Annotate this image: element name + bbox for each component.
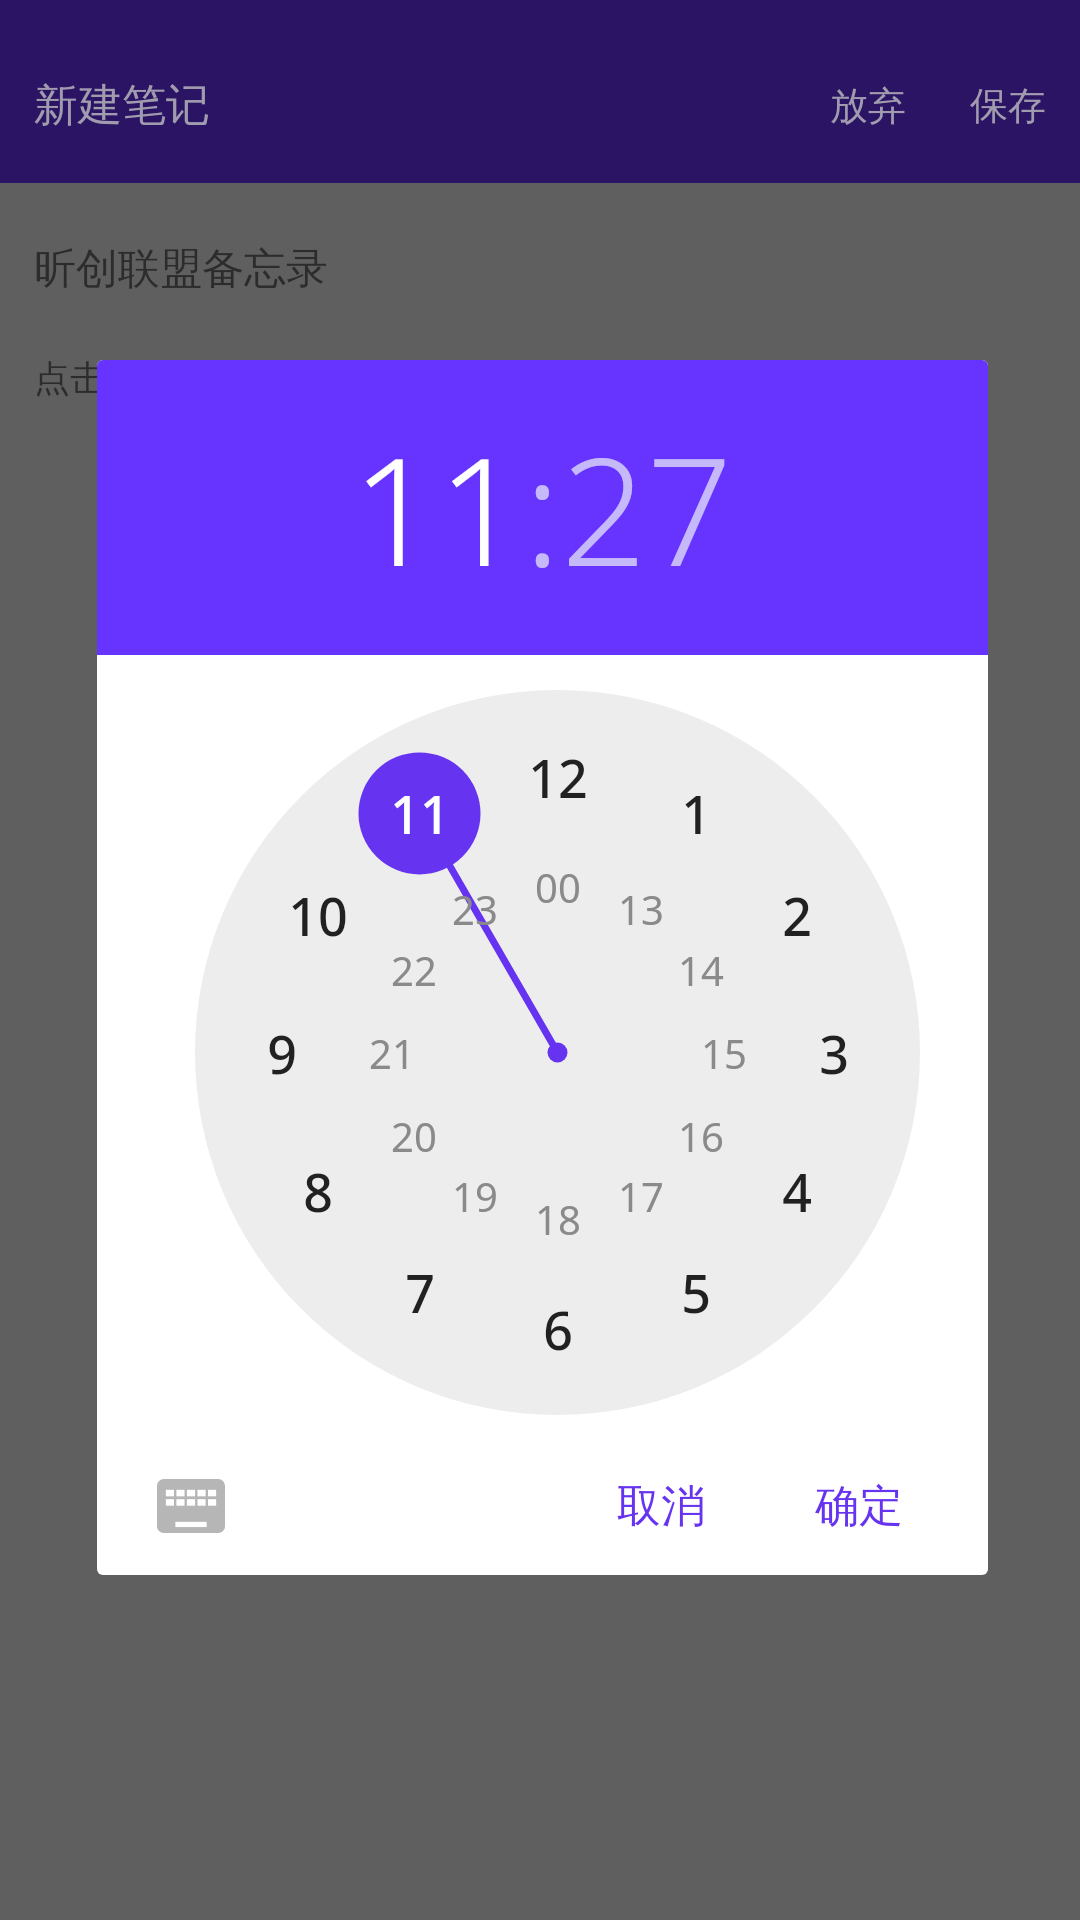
button[interactable]: 7 [360,1257,480,1327]
staticText: 8 [303,1156,333,1226]
button[interactable]: 5 [636,1257,756,1327]
button[interactable]: 11 [352,406,524,610]
staticText: 12 [528,742,588,812]
staticText: 14 [678,943,724,997]
staticText: 17 [618,1169,664,1223]
staticText: 新建笔记 [34,78,210,133]
button[interactable]: 8 [258,1156,378,1226]
button[interactable]: 22 [354,935,474,1005]
staticText: 15 [701,1026,747,1080]
button[interactable]: Switch to text input [155,1477,227,1535]
button[interactable]: 3 [774,1018,894,1088]
staticText: 11 [390,778,450,848]
button[interactable]: 19 [415,1161,535,1231]
button[interactable]: 确定 [803,1467,915,1546]
staticText: 6 [543,1294,573,1364]
button[interactable]: 6 [498,1294,618,1364]
button[interactable]: 10 [258,880,378,950]
button[interactable]: 12 [498,742,618,812]
button[interactable]: 23 [415,874,535,944]
button[interactable]: 9 [222,1018,342,1088]
button[interactable]: 21 [332,1018,452,1088]
button[interactable]: 13 [581,874,701,944]
button[interactable]: 取消 [605,1467,717,1546]
staticText: 13 [618,882,664,936]
staticText: 10 [288,880,348,950]
staticText: 21 [369,1026,415,1080]
staticText: 18 [535,1192,581,1246]
button[interactable]: 00 [498,852,618,922]
button[interactable]: 11 [360,778,480,848]
button[interactable]: 18 [498,1184,618,1254]
staticText: 5 [681,1257,711,1327]
staticText: : [524,406,561,610]
staticText: 3 [819,1018,849,1088]
staticText: 昕创联盟备忘录 [34,243,328,296]
staticText: 22 [391,943,437,997]
staticText: 19 [452,1169,498,1223]
staticText: 点击此处添加内容 [34,356,322,401]
button[interactable]: 17 [581,1161,701,1231]
button[interactable]: 15 [664,1018,784,1088]
staticText: 4 [782,1156,812,1226]
button[interactable]: 2 [737,880,857,950]
staticText: 16 [678,1109,724,1163]
staticText: 20 [391,1109,437,1163]
button[interactable]: 1 [636,778,756,848]
staticText: 23 [452,882,498,936]
button[interactable]: 20 [354,1101,474,1171]
button[interactable]: 4 [737,1156,857,1226]
staticText: 00 [535,860,581,914]
button[interactable]: 放弃 [810,72,926,140]
staticText: 7 [405,1257,435,1327]
button[interactable]: 14 [641,935,761,1005]
staticText: 1 [681,778,711,848]
staticText: 2 [782,880,812,950]
staticText: 9 [267,1018,297,1088]
button[interactable]: 16 [641,1101,761,1171]
button[interactable]: 保存 [950,72,1066,140]
button[interactable]: 27 [561,406,733,610]
